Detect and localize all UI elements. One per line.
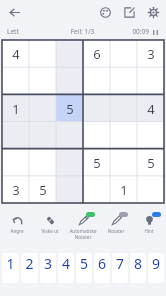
button[interactable]: 4 — [58, 253, 74, 283]
button[interactable]: 6 — [83, 40, 110, 68]
button[interactable] — [2, 68, 29, 95]
button[interactable]: 9 — [148, 253, 164, 283]
button[interactable]: 2 — [21, 253, 38, 283]
staticText: 4 — [147, 100, 155, 118]
button[interactable]: 5 — [76, 253, 92, 283]
button[interactable] — [56, 40, 83, 68]
staticText: 1 — [2, 254, 19, 273]
button[interactable]: 5 — [29, 176, 56, 203]
staticText: Viske ut — [34, 228, 66, 234]
staticText: 7 — [112, 254, 128, 273]
staticText: 4 — [12, 45, 20, 63]
button[interactable] — [110, 95, 137, 122]
button[interactable]: 3 — [137, 40, 164, 68]
staticText: Notater — [100, 228, 132, 234]
button[interactable] — [2, 122, 29, 149]
button[interactable] — [83, 68, 110, 95]
button[interactable]: 5 — [56, 95, 83, 122]
button[interactable] — [29, 122, 56, 149]
button[interactable] — [83, 95, 110, 122]
staticText: 6 — [93, 45, 101, 63]
staticText: Angre — [1, 228, 33, 234]
button[interactable]: Notater — [100, 213, 132, 234]
button[interactable] — [137, 176, 164, 203]
button[interactable] — [29, 95, 56, 122]
button[interactable]: 3 — [2, 176, 29, 203]
button[interactable]: 8 — [130, 253, 146, 283]
button[interactable]: Theme — [97, 4, 113, 20]
staticText: 5 — [39, 181, 47, 199]
button[interactable]: 7 — [112, 253, 128, 283]
staticText: 2 — [21, 254, 38, 273]
button[interactable]: 4 — [137, 95, 164, 122]
button[interactable]: 1 — [2, 253, 19, 283]
staticText: 1 — [120, 181, 128, 199]
button[interactable] — [110, 40, 137, 68]
staticText: 5 — [66, 100, 74, 118]
button[interactable] — [110, 122, 137, 149]
button[interactable]: Settings — [145, 4, 161, 20]
staticText: Lett — [7, 27, 57, 36]
button[interactable] — [137, 68, 164, 95]
button[interactable] — [83, 176, 110, 203]
button[interactable]: 5 — [83, 149, 110, 176]
button[interactable] — [83, 122, 110, 149]
staticText: 4 — [58, 254, 74, 273]
button[interactable] — [2, 149, 29, 176]
button[interactable]: Back — [4, 2, 24, 22]
staticText: 5 — [147, 154, 155, 172]
button[interactable]: Hint — [133, 213, 165, 234]
button[interactable]: Automatiske Notater — [67, 213, 99, 240]
button[interactable]: 6 — [94, 253, 110, 283]
button[interactable] — [56, 149, 83, 176]
button[interactable]: Pause — [151, 28, 159, 36]
staticText: 5 — [76, 254, 92, 273]
staticText: 8 — [130, 254, 146, 273]
staticText: 6 — [94, 254, 110, 273]
button[interactable] — [56, 68, 83, 95]
button[interactable] — [137, 122, 164, 149]
staticText: 3 — [12, 181, 20, 199]
button[interactable] — [110, 149, 137, 176]
staticText: Feil: 1/3 — [57, 27, 108, 36]
staticText: 3 — [147, 45, 155, 63]
staticText: 5 — [93, 154, 101, 172]
button[interactable] — [56, 122, 83, 149]
button[interactable]: 1 — [2, 95, 29, 122]
button[interactable]: 5 — [137, 149, 164, 176]
button[interactable] — [29, 40, 56, 68]
button[interactable] — [29, 68, 56, 95]
staticText: 3 — [40, 254, 56, 273]
staticText: Hint — [133, 228, 165, 234]
staticText: 9 — [148, 254, 164, 273]
button[interactable]: Angre — [1, 213, 33, 234]
button[interactable]: 3 — [40, 253, 56, 283]
button[interactable]: 1 — [110, 176, 137, 203]
button[interactable]: 4 — [2, 40, 29, 68]
button[interactable] — [56, 176, 83, 203]
button[interactable] — [110, 68, 137, 95]
staticText: 00:09 — [132, 27, 149, 36]
button[interactable] — [29, 149, 56, 176]
staticText: 1 — [12, 100, 20, 118]
staticText: Automatiske Notater — [67, 228, 99, 240]
button[interactable]: Share — [121, 4, 137, 20]
button[interactable]: Viske ut — [34, 213, 66, 234]
